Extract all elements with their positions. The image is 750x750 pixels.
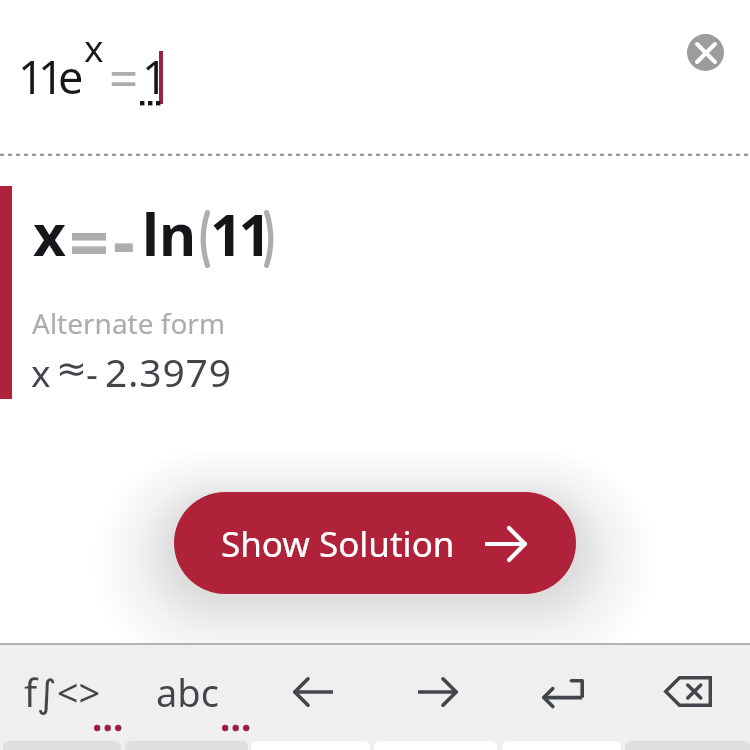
staticText: abc — [156, 666, 219, 718]
button[interactable]: Move right — [375, 646, 500, 741]
button[interactable]: Backspace — [625, 646, 750, 741]
staticText: Show Solution — [221, 520, 455, 568]
button[interactable]: Close — [687, 34, 724, 71]
staticText: Alternate form — [32, 304, 226, 342]
button[interactable]: Symbols — [0, 646, 125, 741]
button[interactable]: abc — [125, 646, 250, 741]
staticText: - — [113, 193, 135, 286]
staticText: = — [109, 42, 139, 111]
staticText: e — [58, 46, 84, 107]
staticText: ≈ — [56, 347, 88, 390]
staticText: ln — [142, 195, 197, 273]
staticText: = — [69, 193, 110, 288]
staticText: x — [31, 347, 51, 397]
staticText: 2.3979 — [105, 345, 232, 398]
staticText: - — [86, 347, 98, 397]
button[interactable]: Move left — [250, 646, 375, 741]
staticText: 1 — [142, 46, 168, 107]
staticText: x — [33, 195, 66, 273]
button[interactable]: Show Solution — [174, 492, 576, 594]
staticText: 1 — [18, 46, 44, 107]
staticText: f∫<> — [24, 666, 101, 718]
staticText: 1 — [38, 46, 64, 107]
button[interactable]: Enter — [500, 646, 625, 741]
staticText: x — [84, 22, 104, 72]
staticText: 11 — [210, 195, 268, 273]
